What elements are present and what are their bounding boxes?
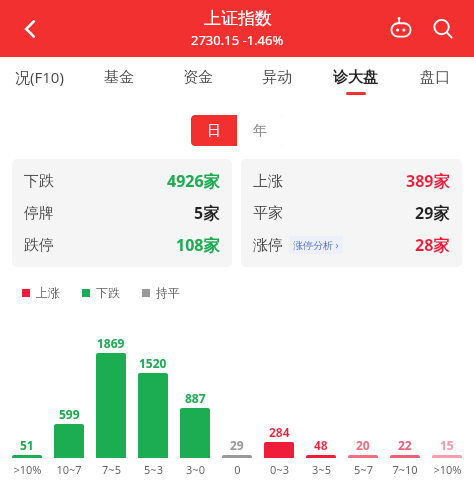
button[interactable]: Assistant robot bbox=[380, 8, 422, 50]
staticText: 1520 bbox=[139, 355, 167, 371]
staticText: 跌停 bbox=[24, 236, 54, 255]
staticText: 29家 bbox=[415, 202, 450, 224]
staticText: 5家 bbox=[194, 202, 220, 224]
button[interactable]: 基金 bbox=[79, 57, 158, 105]
staticText: 10~7 bbox=[56, 462, 82, 477]
button[interactable]: Back bbox=[6, 5, 54, 53]
staticText: 389家 bbox=[406, 170, 450, 192]
staticText: 887 bbox=[185, 390, 206, 406]
staticText: 涨停 bbox=[253, 236, 283, 255]
button[interactable]: 诊大盘 bbox=[316, 57, 395, 105]
staticText: 基金 bbox=[104, 68, 134, 87]
staticText: 上证指数 bbox=[204, 8, 272, 29]
button[interactable]: Search bbox=[422, 8, 464, 50]
button[interactable]: 涨停分析 › bbox=[289, 236, 343, 254]
staticText: 0~3 bbox=[270, 462, 289, 477]
button[interactable]: 年 bbox=[237, 115, 283, 146]
button[interactable]: 异动 bbox=[237, 57, 316, 105]
button[interactable]: 日 bbox=[191, 115, 237, 146]
staticText: 15 bbox=[440, 437, 454, 453]
staticText: 22 bbox=[398, 437, 412, 453]
staticText: 5~7 bbox=[354, 462, 373, 477]
staticText: 51 bbox=[20, 437, 34, 453]
staticText: 日 bbox=[207, 122, 221, 140]
staticText: 48 bbox=[314, 437, 328, 453]
staticText: 诊大盘 bbox=[333, 68, 378, 87]
staticText: 108家 bbox=[176, 234, 220, 256]
staticText: 7~5 bbox=[102, 462, 121, 477]
staticText: 涨停分析 › bbox=[293, 238, 339, 252]
staticText: 盘口 bbox=[420, 68, 450, 87]
staticText: 上涨 bbox=[253, 172, 283, 191]
staticText: 年 bbox=[253, 122, 267, 140]
staticText: 5~3 bbox=[144, 462, 163, 477]
staticText: 平家 bbox=[253, 204, 283, 223]
staticText: 599 bbox=[59, 406, 80, 422]
staticText: 1869 bbox=[97, 335, 125, 351]
staticText: 284 bbox=[269, 424, 290, 440]
staticText: 20 bbox=[356, 437, 370, 453]
staticText: 下跌 bbox=[96, 285, 120, 300]
staticText: 3~5 bbox=[312, 462, 331, 477]
staticText: 29 bbox=[230, 437, 244, 453]
staticText: 3~0 bbox=[186, 462, 205, 477]
staticText: >10% bbox=[433, 462, 462, 477]
staticText: 上涨 bbox=[36, 285, 60, 300]
staticText: 0 bbox=[234, 462, 241, 477]
staticText: 2730.15 -1.46% bbox=[191, 31, 284, 49]
staticText: 资金 bbox=[183, 68, 213, 87]
staticText: >10% bbox=[13, 462, 42, 477]
button[interactable]: 资金 bbox=[158, 57, 237, 105]
staticText: 7~10 bbox=[392, 462, 418, 477]
staticText: 28家 bbox=[415, 234, 450, 256]
staticText: 异动 bbox=[262, 68, 292, 87]
staticText: 4926家 bbox=[167, 170, 220, 192]
staticText: 持平 bbox=[156, 285, 180, 300]
button[interactable]: 况(F10) bbox=[0, 57, 79, 105]
staticText: 况(F10) bbox=[15, 67, 64, 87]
staticText: 下跌 bbox=[24, 172, 54, 191]
button[interactable]: 盘口 bbox=[395, 57, 474, 105]
staticText: 停牌 bbox=[24, 204, 54, 223]
